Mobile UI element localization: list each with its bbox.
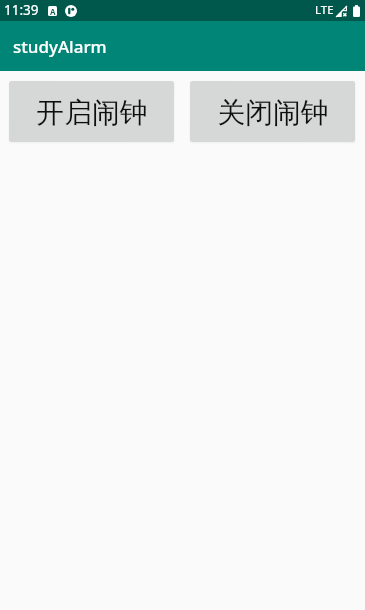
staticText: LTE: [315, 2, 334, 18]
button[interactable]: 关闭闹钟: [190, 81, 355, 142]
other: Notification: [48, 6, 57, 16]
staticText: 开启闹钟: [36, 95, 148, 130]
other: Battery full: [353, 5, 360, 17]
staticText: 11:39: [4, 1, 39, 19]
staticText: studyAlarm: [13, 35, 107, 58]
staticText: A: [50, 6, 56, 16]
other: App notification: [65, 5, 77, 17]
other: No mobile signal: [336, 6, 347, 17]
button[interactable]: 开启闹钟: [9, 81, 174, 142]
staticText: 关闭闹钟: [217, 95, 329, 130]
